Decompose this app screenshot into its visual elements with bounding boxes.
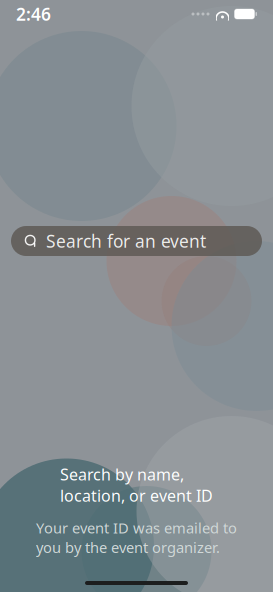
staticText: Search for an event (46, 229, 206, 252)
staticText: Your event ID was emailed to you by the … (36, 518, 237, 557)
staticText: Search by name, location, or event ID (60, 463, 213, 506)
button[interactable]: Search for an event (11, 226, 262, 256)
staticText: 2:46 (16, 2, 51, 25)
